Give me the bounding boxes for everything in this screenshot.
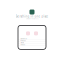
button[interactable]: Alerts [18, 42, 46, 44]
staticText: About [20, 44, 24, 46]
staticText: Simple. Private. Fast. [26, 18, 38, 20]
staticText: Everything in one place [15, 15, 48, 18]
staticText: Privacy [20, 40, 26, 42]
staticText: General [20, 38, 26, 40]
button[interactable]: About [18, 44, 46, 46]
button[interactable]: Privacy [18, 40, 46, 42]
button[interactable]: General [18, 38, 46, 40]
staticText: Alerts [20, 42, 24, 44]
